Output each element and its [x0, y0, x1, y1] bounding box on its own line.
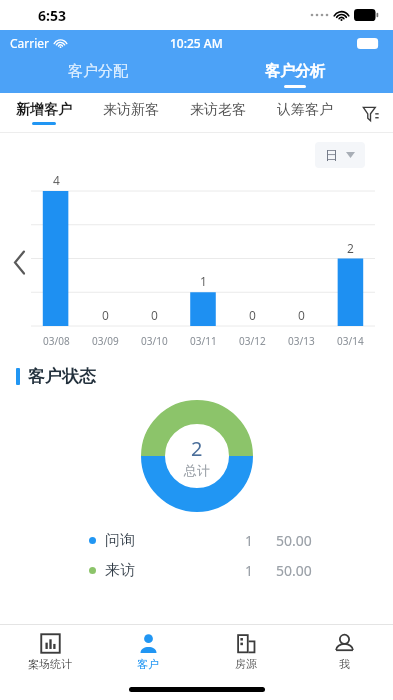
button[interactable]: 日	[315, 142, 365, 168]
staticText: 0	[151, 307, 158, 323]
staticText: 来访老客	[190, 101, 246, 119]
staticText: 案场统计	[28, 657, 72, 671]
staticText: 问询	[105, 531, 135, 550]
staticText: 2	[191, 435, 203, 462]
staticText: 03/10	[141, 334, 168, 348]
staticText: 来访新客	[103, 101, 159, 119]
button[interactable]: 认筹客户	[261, 93, 348, 133]
staticText: 认筹客户	[277, 101, 333, 119]
button[interactable]: 客户分析	[196, 56, 393, 93]
staticText: 客户分析	[265, 62, 325, 81]
button[interactable]: 问询	[0, 525, 393, 555]
button[interactable]: 客户分配	[0, 56, 196, 93]
staticText: 10:25 AM	[170, 35, 223, 51]
staticText: 4	[53, 172, 60, 188]
button[interactable]: 案场统计	[0, 625, 99, 679]
staticText: 03/08	[43, 334, 70, 348]
button[interactable]: Filter	[348, 93, 393, 133]
staticText: 1	[245, 561, 254, 580]
staticText: 0	[102, 307, 109, 323]
staticText: 总计	[184, 462, 210, 478]
staticText: 客户分配	[68, 62, 128, 81]
staticText: 03/14	[337, 334, 364, 348]
staticText: 03/09	[92, 334, 119, 348]
button[interactable]: 来访	[0, 555, 393, 585]
button[interactable]: 我	[295, 625, 393, 679]
staticText: 03/12	[239, 334, 266, 348]
staticText: 2	[347, 240, 354, 256]
button[interactable]: 新增客户	[0, 93, 87, 133]
button[interactable]: 来访老客	[174, 93, 261, 133]
button[interactable]: 客户	[99, 625, 197, 679]
staticText: 03/13	[288, 334, 315, 348]
staticText: 03/11	[190, 334, 217, 348]
staticText: 房源	[235, 657, 257, 671]
staticText: 1	[245, 531, 254, 550]
button[interactable]: 来访新客	[87, 93, 174, 133]
staticText: 我	[339, 657, 350, 671]
button[interactable]: 房源	[197, 625, 295, 679]
staticText: 客户状态	[28, 366, 96, 387]
staticText: 客户	[137, 657, 159, 671]
staticText: 6:53	[38, 6, 66, 25]
staticText: 新增客户	[16, 101, 72, 119]
staticText: 50.00	[276, 561, 338, 580]
staticText: 0	[249, 307, 256, 323]
staticText: Carrier	[10, 35, 50, 51]
staticText: 50.00	[276, 531, 338, 550]
staticText: 0	[298, 307, 305, 323]
staticText: 来访	[105, 561, 135, 580]
staticText: 1	[200, 273, 207, 289]
staticText: 日	[325, 147, 338, 163]
